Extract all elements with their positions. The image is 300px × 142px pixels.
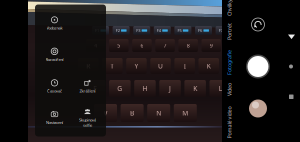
staticText: J bbox=[169, 84, 171, 93]
staticText: Fotografie bbox=[217, 59, 242, 66]
staticText: selfie bbox=[83, 122, 92, 128]
staticText: H bbox=[142, 84, 147, 93]
button[interactable]: Portrét bbox=[226, 8, 233, 54]
staticText: 8 bbox=[187, 42, 190, 49]
button[interactable]: Skupinová bbox=[71, 105, 104, 131]
staticText: F9 bbox=[260, 28, 264, 33]
staticText: F5 bbox=[177, 28, 181, 33]
staticText: 6 bbox=[140, 42, 143, 49]
staticText: F2 bbox=[116, 28, 120, 33]
staticText: F4 bbox=[157, 28, 161, 33]
staticText: F1 bbox=[95, 28, 99, 33]
staticText: 5 bbox=[117, 42, 120, 49]
staticText: F3 bbox=[136, 28, 140, 33]
staticText: F7 bbox=[219, 28, 223, 33]
staticText: F6 bbox=[198, 28, 202, 33]
staticText: Časovač bbox=[47, 88, 62, 94]
button[interactable]: Časovač bbox=[38, 73, 71, 99]
button[interactable]: Show options bbox=[288, 34, 295, 39]
button[interactable]: Gallery bbox=[249, 99, 267, 117]
staticText: L bbox=[219, 84, 222, 93]
staticText: 7 bbox=[164, 42, 167, 49]
staticText: U bbox=[158, 62, 163, 70]
button[interactable]: Chvilky bbox=[226, 0, 233, 30]
button[interactable]: Zkrášlení bbox=[71, 73, 104, 99]
staticText: 9 bbox=[210, 42, 213, 49]
staticText: T bbox=[110, 62, 114, 70]
button[interactable]: Switch camera bbox=[250, 16, 266, 32]
staticText: Rozostření bbox=[45, 57, 63, 62]
staticText: Portrét bbox=[221, 28, 238, 35]
staticText: Y bbox=[134, 62, 138, 70]
staticText: B bbox=[130, 109, 134, 117]
button[interactable]: Rozostření bbox=[38, 42, 71, 68]
button[interactable]: Nastavení bbox=[38, 105, 71, 131]
staticText: Zkrášlení bbox=[79, 88, 95, 94]
button[interactable]: Pomalé video bbox=[226, 99, 233, 142]
staticText: 4 bbox=[94, 42, 97, 49]
staticText: F bbox=[93, 84, 96, 93]
staticText: R bbox=[86, 62, 90, 70]
staticText: G bbox=[117, 84, 122, 93]
staticText: Chvilky bbox=[221, 4, 238, 11]
button[interactable]: Fotografie bbox=[226, 39, 233, 85]
button[interactable]: Video bbox=[226, 66, 233, 112]
button[interactable]: Take photo bbox=[246, 54, 270, 78]
staticText: M bbox=[182, 109, 188, 117]
staticText: Nastavení bbox=[46, 120, 63, 125]
staticText: Vodoznak bbox=[46, 25, 62, 31]
staticText: V bbox=[103, 109, 107, 117]
staticText: K bbox=[207, 62, 211, 70]
staticText: Pomalé video bbox=[213, 119, 245, 126]
staticText: I bbox=[184, 62, 186, 70]
button[interactable]: Vodoznak bbox=[38, 10, 71, 36]
staticText: Video bbox=[223, 86, 236, 93]
staticText: Skupinová bbox=[79, 117, 96, 122]
staticText: K bbox=[193, 84, 197, 93]
staticText: N bbox=[156, 109, 161, 117]
